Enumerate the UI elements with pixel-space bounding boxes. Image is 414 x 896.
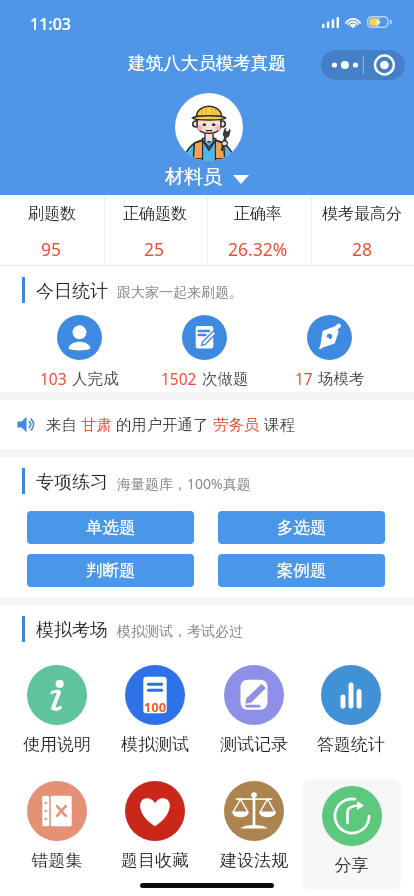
staticText: 正确题数 — [123, 204, 187, 224]
staticText: 答题统计 — [302, 734, 400, 755]
staticText: 模拟测试 — [106, 734, 204, 755]
staticText: 多选题 — [277, 517, 327, 538]
staticText: 103 — [40, 368, 67, 389]
staticText: 模考最高分 — [322, 204, 402, 224]
staticText: 模拟测试，考试必过 — [117, 623, 243, 641]
staticText: 的用户开通了 — [112, 414, 213, 435]
staticText: 来自 — [46, 414, 81, 435]
button[interactable]: More options — [321, 50, 405, 80]
button[interactable]: 分享 — [302, 779, 401, 890]
staticText: 判断题 — [86, 560, 136, 581]
button[interactable]: Completed today — [16, 315, 142, 389]
button[interactable]: Questions answered — [142, 315, 267, 389]
button[interactable]: 使用说明 — [8, 658, 106, 762]
staticText: 专项练习 — [36, 471, 108, 494]
staticText: 1502 — [161, 368, 197, 389]
staticText: 11:03 — [30, 13, 71, 35]
staticText: 模拟考场 — [36, 619, 108, 642]
staticText: 材料员 — [165, 165, 222, 189]
staticText: 26.32% — [228, 237, 288, 261]
staticText: 使用说明 — [8, 734, 106, 755]
staticText: 甘肃 — [81, 415, 112, 434]
staticText: 场模考 — [318, 369, 365, 389]
staticText: 测试记录 — [205, 734, 303, 755]
button[interactable]: 案例题 — [218, 554, 385, 587]
button[interactable]: Mock exams — [267, 315, 392, 389]
button[interactable]: 多选题 — [218, 511, 385, 544]
button[interactable]: 错题集 — [8, 774, 106, 878]
staticText: 今日统计 — [36, 280, 108, 303]
staticText: 刷题数 — [28, 204, 76, 224]
staticText: 案例题 — [277, 560, 327, 581]
button[interactable]: Profile avatar — [175, 93, 243, 161]
button[interactable]: 测试记录 — [205, 658, 303, 762]
staticText: 跟大家一起来刷题。 — [117, 284, 243, 302]
staticText: 劳务员 — [213, 415, 260, 434]
button[interactable]: 正确题数 — [103, 195, 206, 266]
staticText: 95 — [41, 237, 62, 261]
button[interactable]: 模拟测试 — [106, 658, 204, 762]
button[interactable]: 单选题 — [27, 511, 194, 544]
staticText: 正确率 — [234, 204, 282, 224]
staticText: 单选题 — [86, 517, 136, 538]
button[interactable]: 模考最高分 — [310, 195, 414, 266]
staticText: 17 — [295, 368, 313, 389]
staticText: 人完成 — [72, 369, 119, 389]
staticText: 题目收藏 — [106, 850, 204, 871]
staticText: 建设法规 — [205, 850, 303, 871]
staticText: 次做题 — [202, 369, 249, 389]
button[interactable]: 判断题 — [27, 554, 194, 587]
staticText: 建筑八大员模考真题 — [0, 52, 414, 74]
button[interactable]: 正确率 — [206, 195, 310, 266]
button[interactable]: 答题统计 — [302, 658, 400, 762]
button[interactable]: 来自 — [0, 400, 414, 449]
button[interactable]: 刷题数 — [0, 195, 103, 266]
staticText: 分享 — [302, 855, 401, 876]
staticText: 100 — [125, 698, 185, 716]
staticText: 错题集 — [8, 850, 106, 871]
button[interactable]: 建设法规 — [205, 774, 303, 878]
staticText: 课程 — [260, 414, 295, 435]
staticText: 海量题库，100%真题 — [117, 474, 251, 493]
button[interactable]: 题目收藏 — [106, 774, 204, 878]
button[interactable]: 材料员 — [165, 165, 249, 189]
staticText: 28 — [352, 237, 373, 261]
staticText: 25 — [144, 237, 165, 261]
